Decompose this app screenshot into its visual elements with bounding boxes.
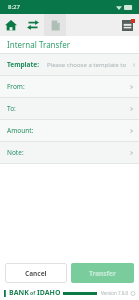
button[interactable]: Accounts xyxy=(115,14,139,36)
button[interactable]: Documents xyxy=(44,14,66,36)
staticText: IDAHO xyxy=(37,288,61,298)
button[interactable]: Note: xyxy=(0,142,139,163)
staticText: Cancel xyxy=(25,269,47,278)
button[interactable]: Info xyxy=(131,291,135,296)
button[interactable]: Template: xyxy=(0,54,139,75)
staticText: of xyxy=(30,290,36,297)
button[interactable]: Amount: xyxy=(0,120,139,141)
staticText: Amount: xyxy=(7,126,34,135)
button[interactable]: Home xyxy=(0,14,22,36)
button[interactable]: From: xyxy=(0,76,139,97)
button[interactable]: To: xyxy=(0,98,139,119)
staticText: Note: xyxy=(7,148,24,157)
staticText: To: xyxy=(7,104,16,113)
button[interactable]: Transfer xyxy=(71,263,134,283)
staticText: Transfer xyxy=(89,269,116,278)
staticText: Internal Transfer xyxy=(7,39,70,50)
staticText: Please choose a template to continue xyxy=(47,61,134,69)
staticText: From: xyxy=(7,82,25,91)
staticText: 8:27 xyxy=(8,3,20,11)
button[interactable]: Transfers xyxy=(22,14,44,36)
staticText: BANK xyxy=(9,288,29,298)
staticText: Version 7.0.0 xyxy=(101,290,129,296)
button[interactable]: Cancel xyxy=(5,263,67,283)
staticText: Template: xyxy=(7,60,39,69)
